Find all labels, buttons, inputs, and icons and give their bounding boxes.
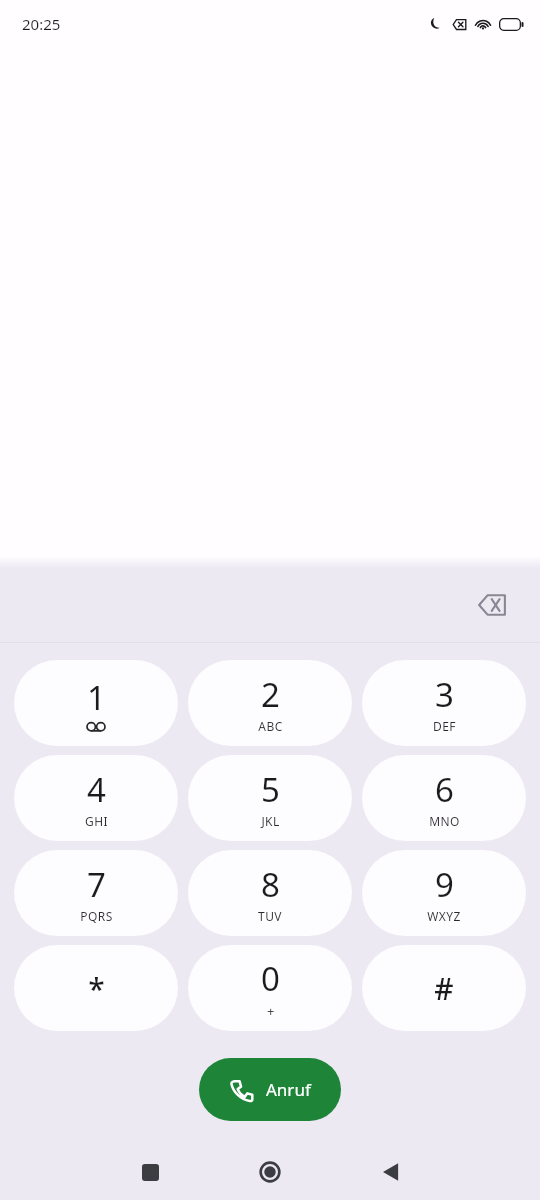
staticText: MNO — [429, 813, 460, 829]
staticText: 4 — [87, 767, 106, 812]
button[interactable]: Back — [368, 1150, 412, 1194]
staticText: 6 — [435, 767, 454, 812]
button[interactable]: 6 — [362, 755, 526, 841]
staticText: 3 — [435, 672, 454, 717]
button[interactable]: Recents — [128, 1150, 172, 1194]
staticText: Anruf — [266, 1078, 311, 1101]
button[interactable]: 5 — [188, 755, 352, 841]
button[interactable]: 7 — [14, 850, 178, 936]
button[interactable]: * — [14, 945, 178, 1031]
button[interactable]: # — [362, 945, 526, 1031]
button[interactable]: Anruf — [199, 1058, 341, 1121]
staticText: 0 — [261, 956, 280, 1001]
staticText: DEF — [433, 718, 456, 734]
staticText: 8 — [261, 862, 280, 907]
staticText: + — [267, 1002, 275, 1020]
button[interactable]: 1 — [14, 660, 178, 746]
button[interactable]: 0 — [188, 945, 352, 1031]
staticText: PQRS — [80, 908, 113, 924]
staticText: ABC — [258, 718, 283, 734]
staticText: 20:25 — [22, 14, 61, 34]
staticText: 1 — [87, 675, 106, 720]
staticText: 9 — [435, 862, 454, 907]
staticText: 7 — [87, 862, 106, 907]
staticText: 5 — [261, 767, 280, 812]
staticText: * — [88, 968, 105, 1009]
button[interactable]: Backspace — [468, 581, 516, 629]
staticText: # — [434, 968, 454, 1009]
button[interactable]: 2 — [188, 660, 352, 746]
button[interactable]: 3 — [362, 660, 526, 746]
button[interactable]: 8 — [188, 850, 352, 936]
staticText: 2 — [261, 672, 280, 717]
button[interactable]: 9 — [362, 850, 526, 936]
button[interactable]: Home — [248, 1150, 292, 1194]
staticText: JKL — [261, 813, 280, 829]
button[interactable]: 4 — [14, 755, 178, 841]
staticText: GHI — [85, 813, 108, 829]
staticText: TUV — [258, 908, 282, 924]
staticText: WXYZ — [427, 908, 461, 924]
